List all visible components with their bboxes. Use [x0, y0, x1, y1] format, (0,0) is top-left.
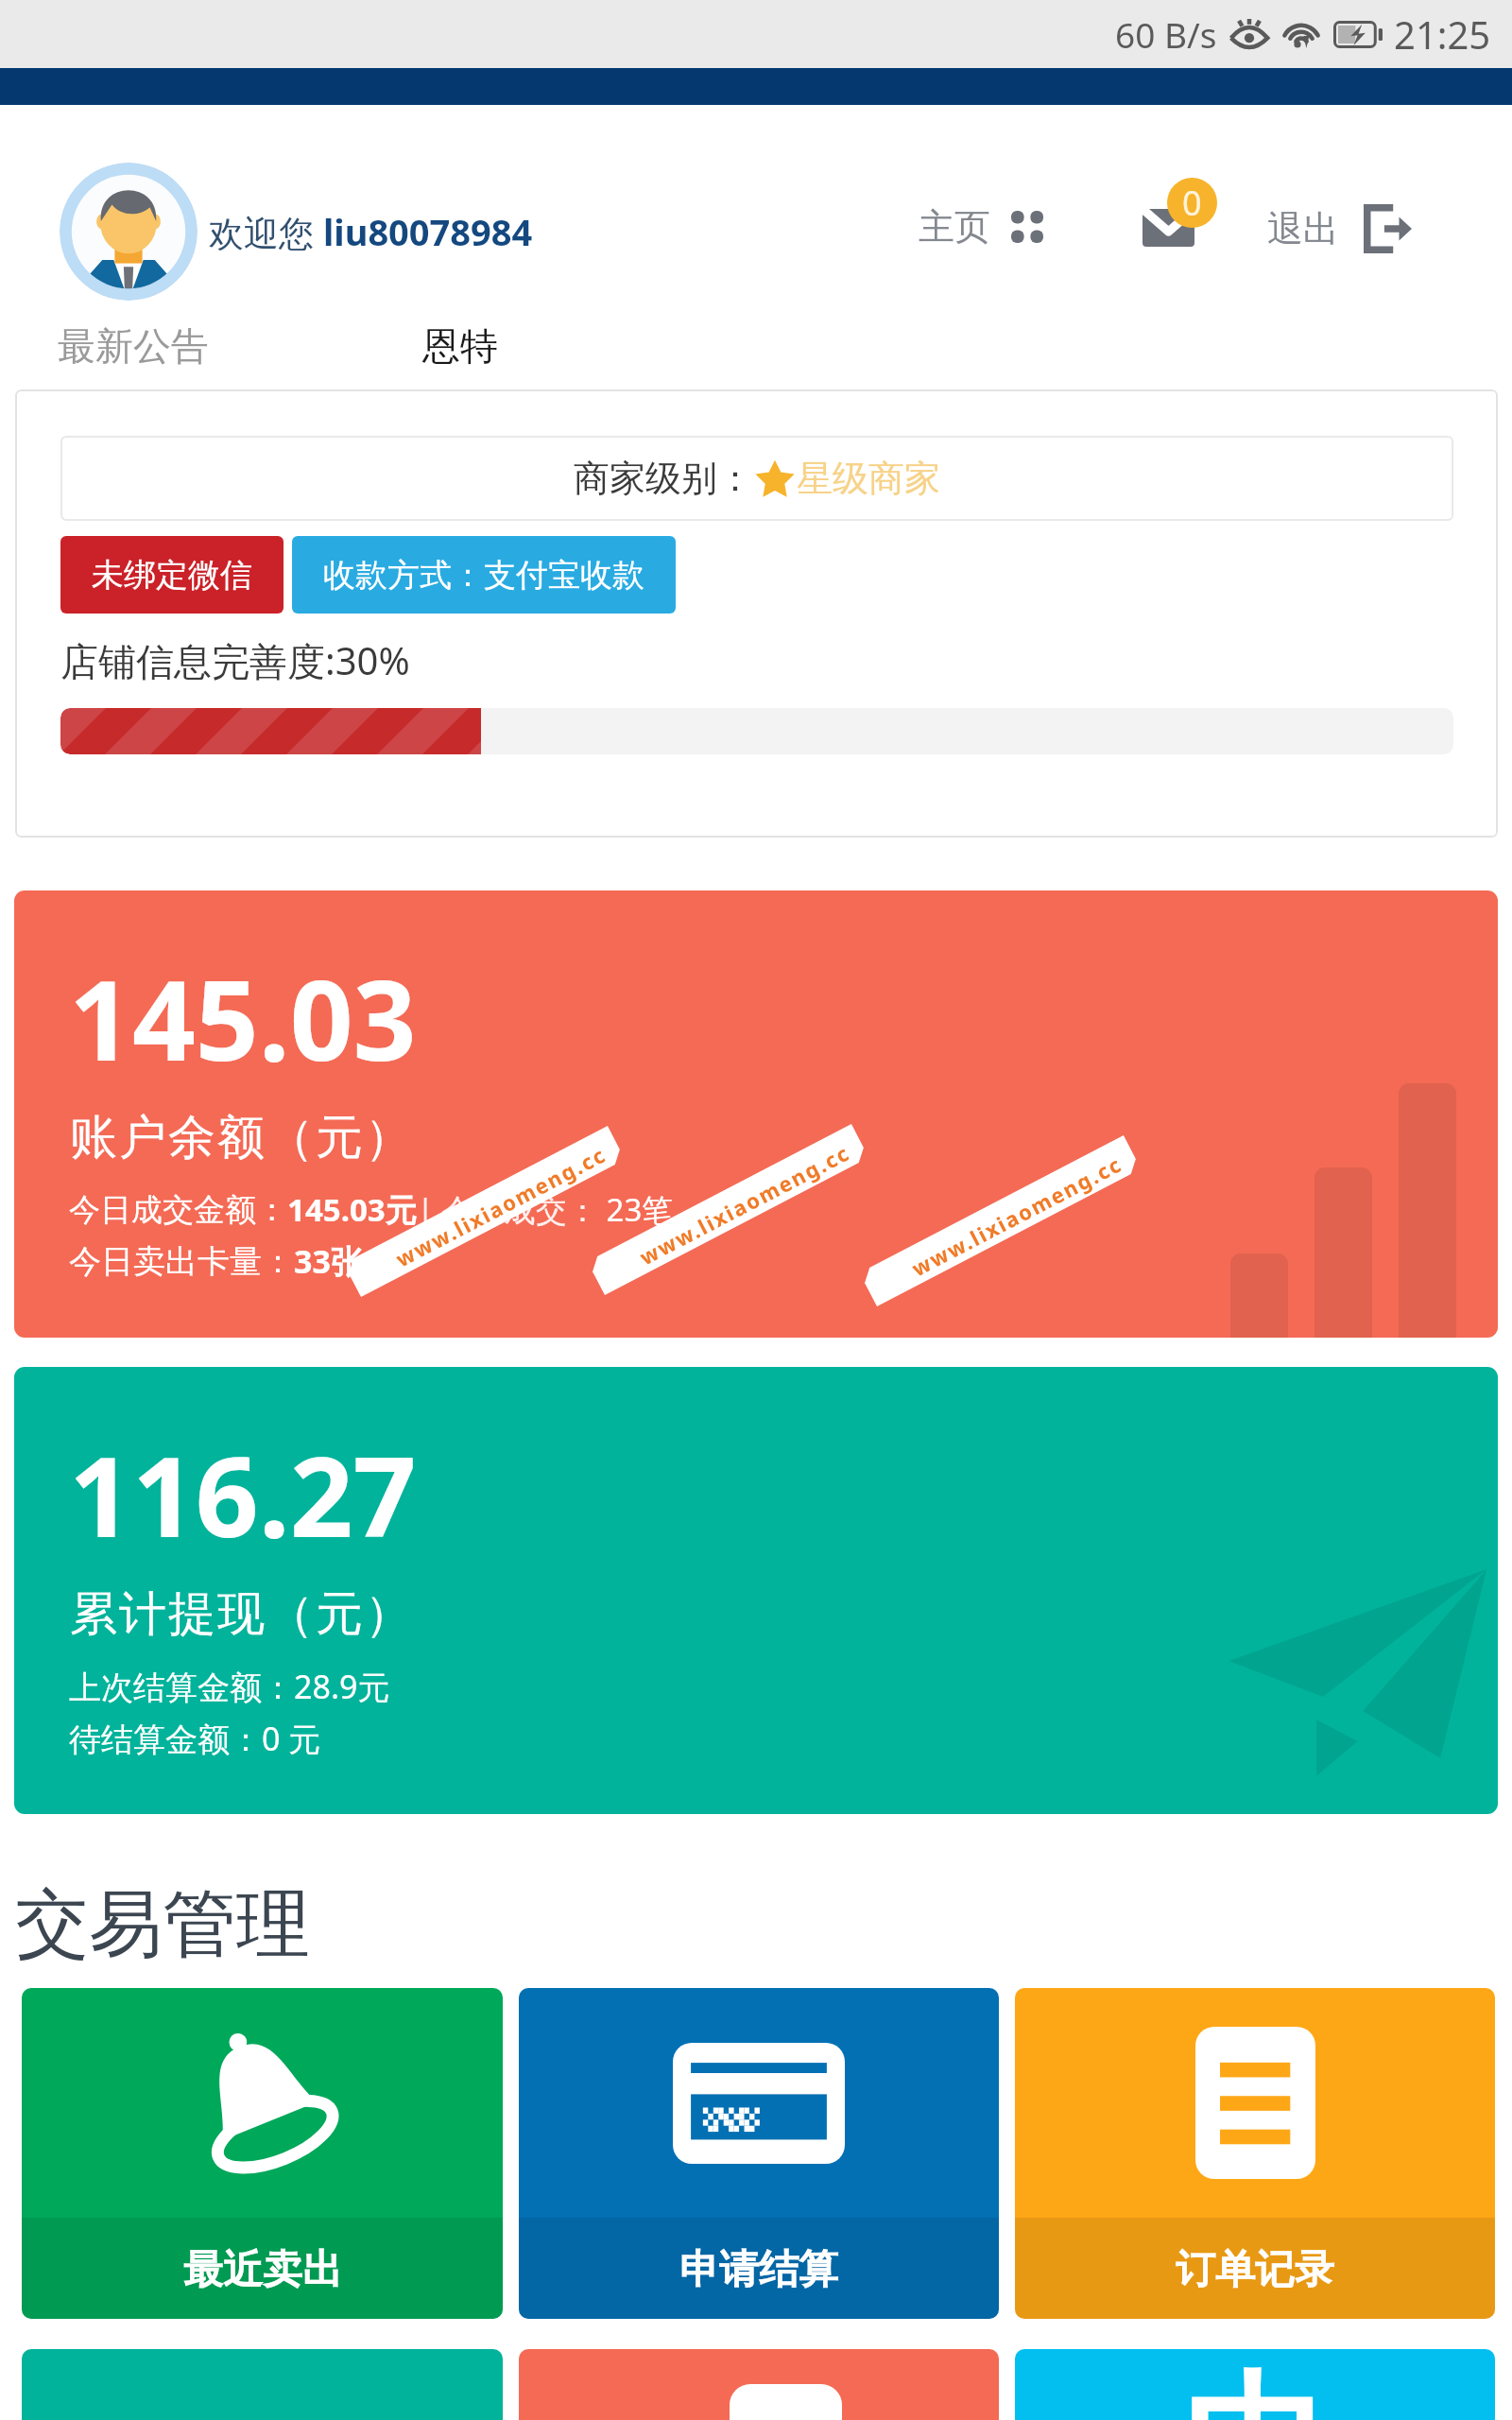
staticText: 星级商家	[797, 456, 940, 501]
staticText: www.lixiaomeng.cc	[391, 1140, 611, 1273]
staticText: 收款方式：支付宝收款	[323, 555, 644, 596]
staticText: 未绑定微信	[92, 555, 252, 596]
staticText: 交易管理	[15, 1878, 310, 1971]
staticText: 累计提现（元）	[69, 1584, 413, 1644]
button[interactable]: 未绑定微信	[60, 536, 283, 614]
staticText: 23笔	[598, 1188, 674, 1231]
staticText: 33张	[294, 1239, 363, 1283]
staticText: 中	[1184, 2354, 1326, 2420]
button[interactable]: 收款方式：支付宝收款	[292, 536, 676, 614]
staticText: www.lixiaomeng.cc	[907, 1149, 1127, 1282]
button[interactable]: 欢迎您	[209, 207, 533, 256]
staticText: 145.03元	[287, 1188, 417, 1231]
staticText: 店铺信息完善度:30%	[60, 634, 410, 686]
button[interactable]: Profile	[60, 163, 198, 301]
staticText: 116.27	[69, 1419, 417, 1569]
staticText: liu80078984	[323, 207, 533, 256]
button[interactable]: Messages	[1139, 173, 1224, 249]
button[interactable]: 订单记录	[1015, 1988, 1495, 2319]
button[interactable]: Account balance 145.03	[14, 890, 1498, 1338]
staticText: 0	[1182, 180, 1202, 226]
staticText: 待结算金额：0 元	[69, 1717, 321, 1760]
staticText: www.lixiaomeng.cc	[634, 1138, 854, 1271]
staticText: 今日卖出卡量：	[69, 1241, 294, 1282]
button[interactable]: 最近卖出	[22, 1988, 503, 2319]
staticText: 订单记录	[1176, 2245, 1334, 2295]
button[interactable]: 申请结算	[519, 1988, 999, 2319]
staticText: 145.03	[69, 942, 417, 1093]
staticText: 60 B/s	[1115, 10, 1217, 58]
button[interactable]: 退出	[1267, 204, 1412, 253]
staticText: 最近卖出	[183, 2245, 342, 2295]
button[interactable]: 主页	[919, 204, 1043, 250]
button[interactable]: More 1	[22, 2349, 503, 2420]
staticText: | 今日成交：	[417, 1188, 598, 1231]
staticText: 21:25	[1394, 9, 1491, 60]
staticText: 商家级别：	[574, 456, 753, 501]
staticText: 最新公告	[58, 322, 209, 370]
staticText: 欢迎您	[209, 208, 323, 256]
button[interactable]: Total withdrawn 116.27	[14, 1367, 1498, 1814]
staticText: 申请结算	[679, 2245, 838, 2295]
staticText: 今日成交金额：	[69, 1190, 287, 1230]
button[interactable]: More 3	[1015, 2349, 1495, 2420]
staticText: 上次结算金额：28.9元	[69, 1665, 390, 1708]
staticText: 退出	[1267, 206, 1339, 251]
button[interactable]: 最新公告	[58, 315, 498, 377]
staticText: 恩特	[422, 322, 498, 370]
staticText: 账户余额（元）	[69, 1108, 413, 1167]
button[interactable]: More 2	[519, 2349, 999, 2420]
staticText: 主页	[919, 204, 990, 250]
